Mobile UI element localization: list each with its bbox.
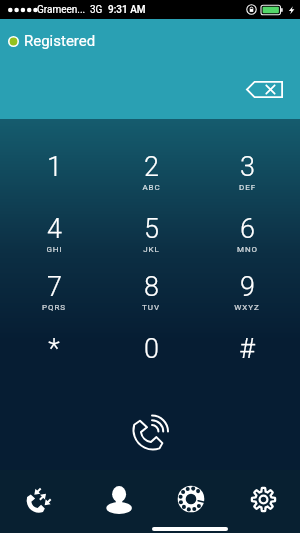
staticText: 4: [47, 213, 62, 245]
staticText: 0: [144, 333, 159, 365]
staticText: Registered: [24, 32, 96, 50]
button[interactable]: 2: [111, 151, 191, 199]
button[interactable]: 1: [14, 151, 94, 199]
staticText: ABC: [142, 183, 161, 192]
staticText: *: [48, 333, 60, 365]
staticText: MNO: [237, 245, 258, 254]
button[interactable]: 6: [207, 213, 287, 261]
button[interactable]: 3: [207, 151, 287, 199]
staticText: 3G: [90, 4, 103, 16]
staticText: #: [239, 333, 255, 365]
button[interactable]: Contacts: [92, 473, 146, 527]
staticText: TUV: [142, 303, 160, 312]
button[interactable]: Keypad: [164, 472, 218, 526]
staticText: DEF: [239, 183, 256, 192]
staticText: Grameen...: [37, 4, 86, 16]
staticText: 7: [47, 271, 62, 303]
staticText: 3: [240, 151, 255, 183]
staticText: 8: [144, 271, 159, 303]
button[interactable]: *: [14, 333, 94, 381]
button[interactable]: Backspace: [246, 81, 283, 98]
button[interactable]: 0: [111, 333, 191, 381]
staticText: 5: [144, 213, 159, 245]
button[interactable]: 8: [111, 271, 191, 319]
button[interactable]: #: [207, 333, 287, 381]
button[interactable]: 9: [207, 271, 287, 319]
staticText: 9: [240, 271, 255, 303]
staticText: PQRS: [42, 303, 66, 312]
staticText: 2: [144, 151, 159, 183]
button[interactable]: 4: [14, 213, 94, 261]
button[interactable]: Recents: [11, 473, 65, 527]
staticText: 6: [240, 213, 255, 245]
staticText: WXYZ: [234, 303, 260, 312]
button[interactable]: Call: [126, 408, 174, 456]
button[interactable]: Settings: [236, 472, 290, 526]
button[interactable]: 7: [14, 271, 94, 319]
staticText: GHI: [46, 245, 63, 254]
staticText: 9:31 AM: [108, 4, 146, 16]
staticText: JKL: [143, 245, 160, 254]
button[interactable]: 5: [111, 213, 191, 261]
staticText: 1: [47, 151, 62, 183]
